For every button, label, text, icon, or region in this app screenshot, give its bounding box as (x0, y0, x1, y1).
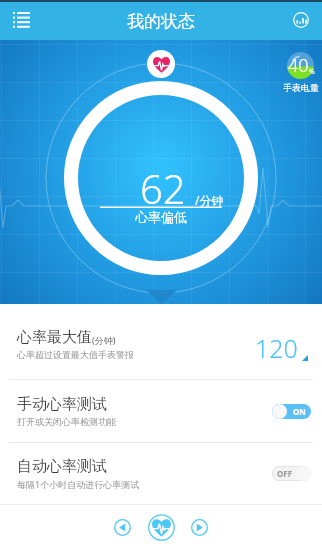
staticText: 120 (255, 331, 298, 365)
button[interactable]: 心率最大值 (0, 304, 322, 379)
button[interactable]: Switch off (272, 466, 311, 481)
button[interactable]: Watch battery 40 percent (287, 52, 314, 79)
staticText: 心率偏低 (135, 209, 187, 225)
staticText: 自动心率测试 (17, 457, 107, 476)
staticText: 心率最大值 (17, 328, 92, 347)
staticText: /分钟 (195, 192, 224, 208)
staticText: 心率超过设置最大值手表警报 (17, 349, 134, 360)
button[interactable]: Statistics (286, 5, 316, 35)
button[interactable]: 手动心率测试 (0, 380, 322, 442)
staticText: 每隔1个小时自动进行心率测试 (17, 478, 140, 490)
staticText: ON (293, 406, 306, 417)
staticText: 62 (140, 161, 186, 215)
button[interactable]: Switch on (272, 404, 311, 419)
button[interactable]: Previous (106, 511, 138, 543)
button[interactable]: 自动心率测试 (0, 443, 322, 504)
staticText: 我的状态 (127, 11, 195, 32)
staticText: 打开或关闭心率检测功能 (17, 416, 116, 427)
button[interactable]: Heart rate (145, 511, 177, 543)
button[interactable]: Menu (6, 5, 36, 35)
button[interactable]: Next (183, 511, 215, 543)
staticText: OFF (277, 468, 293, 479)
staticText: % (309, 67, 315, 77)
staticText: (分钟) (92, 334, 116, 346)
staticText: 手表电量 (283, 82, 319, 93)
staticText: 手动心率测试 (17, 395, 107, 414)
staticText: 40 (288, 53, 309, 78)
